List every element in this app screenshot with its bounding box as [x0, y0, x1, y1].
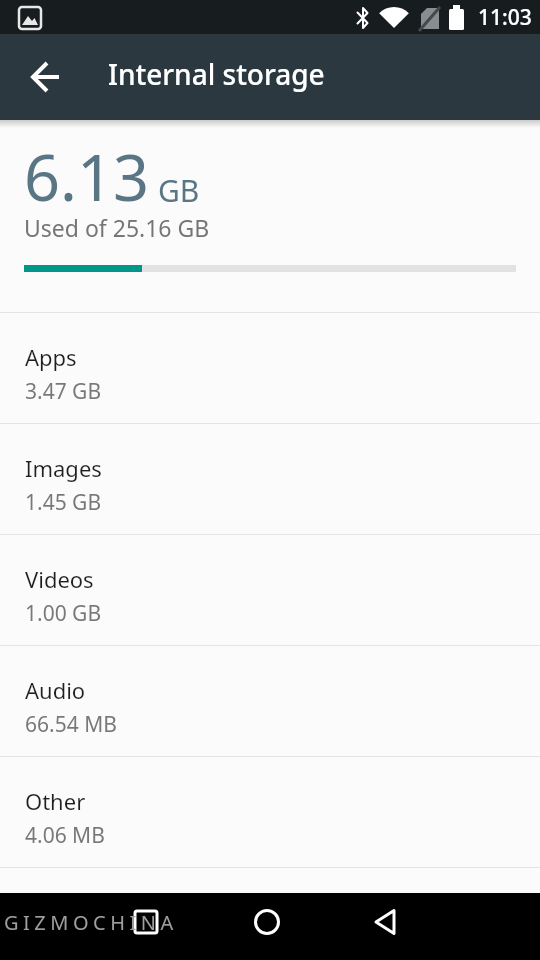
staticText: 1.00 GB [25, 599, 102, 628]
staticText: Audio [25, 675, 86, 705]
staticText: Internal storage [108, 55, 325, 93]
button[interactable]: Videos [0, 535, 540, 645]
button[interactable]: Audio [0, 646, 540, 756]
button[interactable]: Apps [0, 313, 540, 423]
button[interactable] [20, 54, 66, 100]
staticText: GIZMOCHINA [4, 909, 178, 936]
staticText: 6.13 [24, 134, 149, 220]
staticText: 4.06 MB [25, 821, 105, 850]
button[interactable]: GIZMOCHINA [0, 893, 178, 960]
button[interactable]: Images [0, 424, 540, 534]
button[interactable] [362, 903, 410, 951]
staticText: GB [158, 170, 200, 211]
button[interactable]: Other [0, 757, 540, 867]
staticText: 1.45 GB [25, 488, 102, 517]
staticText: 11:03 [478, 3, 532, 32]
staticText: 3.47 GB [25, 377, 102, 406]
button[interactable] [122, 903, 170, 951]
staticText: Used of 25.16 GB [24, 212, 210, 243]
staticText: Images [25, 453, 102, 483]
staticText: Other [25, 786, 86, 816]
staticText: Apps [25, 342, 77, 372]
button[interactable] [243, 903, 291, 951]
staticText: 66.54 MB [25, 710, 117, 739]
staticText: Videos [25, 564, 94, 594]
